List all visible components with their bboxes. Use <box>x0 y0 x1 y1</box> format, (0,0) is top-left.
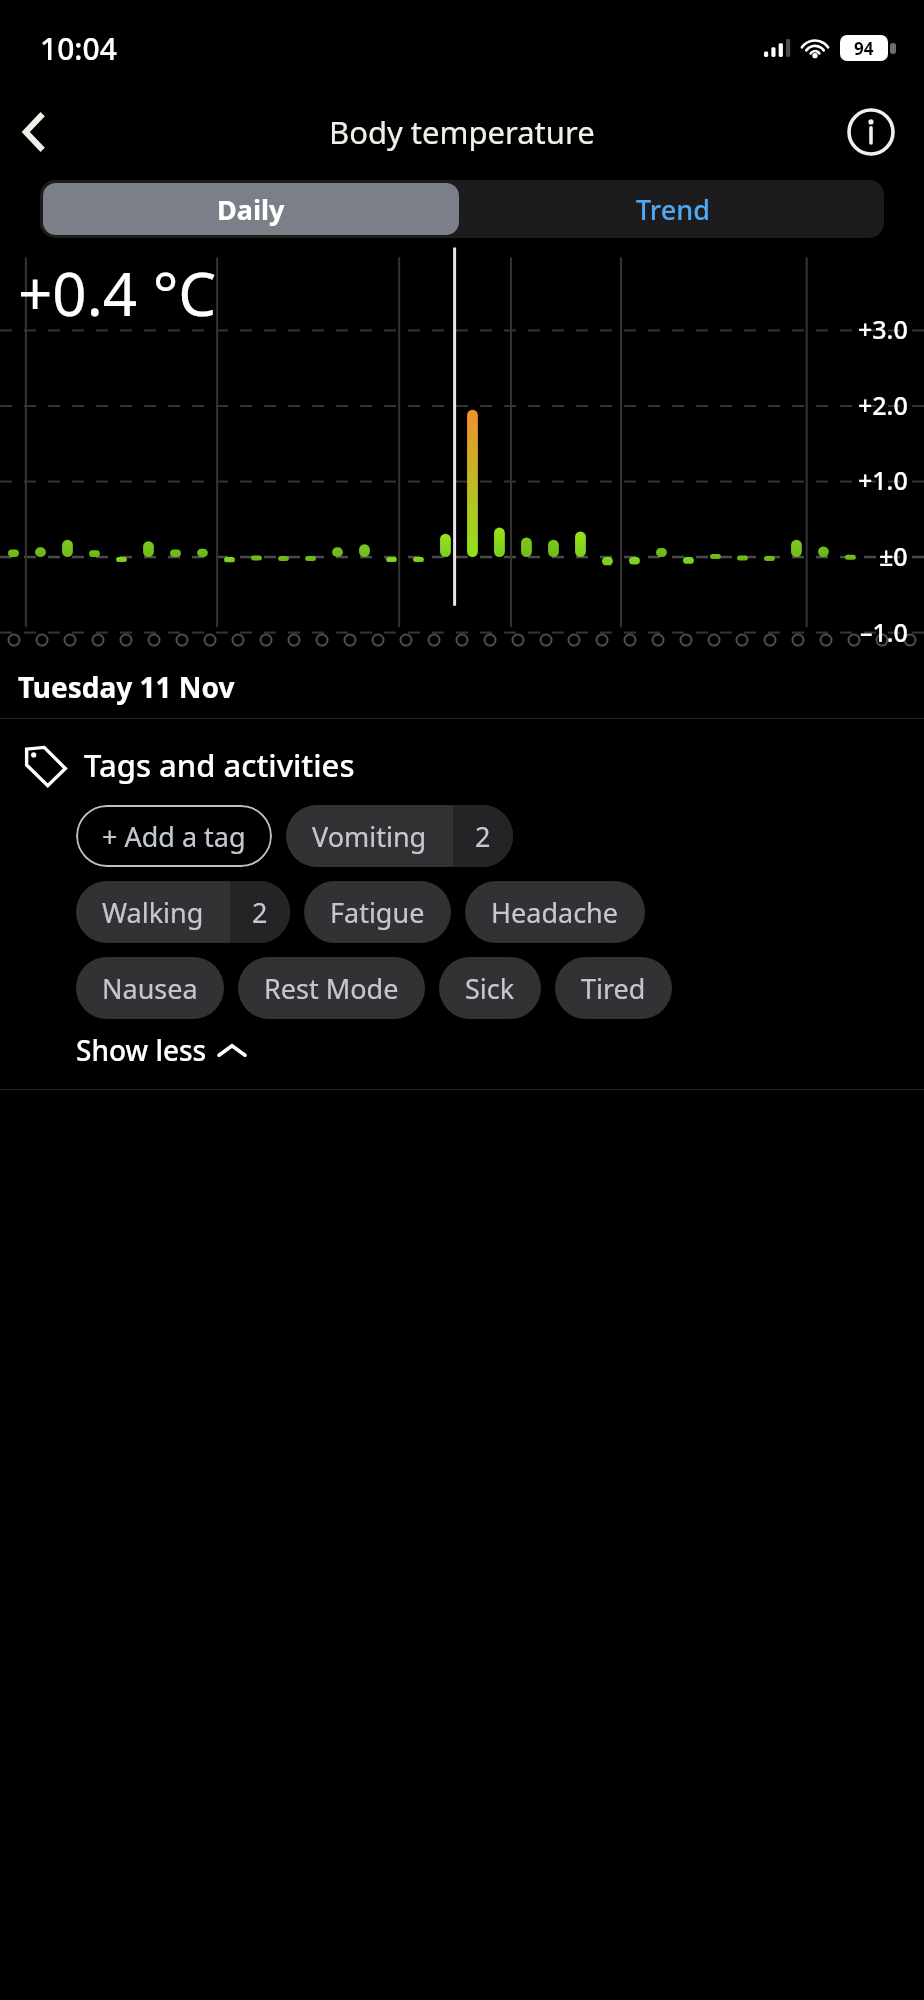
staticText: 94 <box>854 37 874 60</box>
button[interactable]: Fatigue <box>304 881 451 943</box>
staticText: Nausea <box>102 970 198 1007</box>
staticText: 2 <box>252 894 268 931</box>
staticText: +2.0 <box>858 388 908 422</box>
staticText: Show less <box>76 1031 207 1069</box>
staticText: 2 <box>475 818 491 855</box>
button[interactable]: Information <box>840 101 902 163</box>
button[interactable]: + Add a tag <box>76 805 272 867</box>
button[interactable]: Trend <box>462 180 884 238</box>
staticText: –1.0 <box>860 615 908 649</box>
staticText: +1.0 <box>858 463 908 497</box>
staticText: Body temperature <box>329 111 595 153</box>
staticText: Tags and activities <box>84 744 355 786</box>
staticText: Tired <box>581 970 646 1007</box>
staticText: Walking <box>102 894 204 931</box>
staticText: +0.4 °C <box>18 252 217 334</box>
staticText: Daily <box>217 191 285 228</box>
staticText: + Add a tag <box>102 818 246 855</box>
staticText: Fatigue <box>330 894 425 931</box>
button[interactable]: Daily <box>43 183 459 235</box>
staticText: +3.0 <box>858 312 908 346</box>
button[interactable]: Vomiting <box>286 805 513 867</box>
staticText: Rest Mode <box>264 970 399 1007</box>
button[interactable]: Tired <box>555 957 672 1019</box>
button[interactable]: Show less <box>76 1031 245 1069</box>
staticText: ±0 <box>879 539 908 573</box>
button[interactable]: Headache <box>465 881 645 943</box>
staticText: Vomiting <box>312 818 427 855</box>
button[interactable]: Back <box>0 97 70 167</box>
button[interactable]: Rest Mode <box>238 957 425 1019</box>
button[interactable]: Sick <box>439 957 541 1019</box>
staticText: Tuesday 11 Nov <box>18 668 235 706</box>
staticText: Trend <box>636 191 710 228</box>
staticText: Sick <box>465 970 515 1007</box>
button[interactable]: Nausea <box>76 957 224 1019</box>
staticText: 10:04 <box>40 28 117 69</box>
button[interactable]: Walking <box>76 881 290 943</box>
staticText: Headache <box>491 894 619 931</box>
